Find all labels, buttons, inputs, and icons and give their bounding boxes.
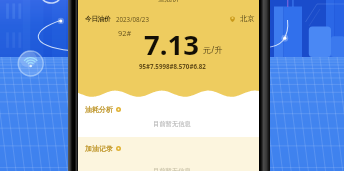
button[interactable]: Select city: [229, 14, 256, 23]
staticText: 元/升: [203, 44, 223, 55]
staticText: 查油价: [158, 0, 179, 3]
staticText: 加油记录: [85, 144, 113, 153]
staticText: 92#: [118, 28, 132, 38]
staticText: 目前暂无信息: [153, 120, 191, 128]
staticText: 目前暂无信息: [153, 167, 191, 171]
staticText: 油耗分析: [85, 105, 113, 114]
staticText: 今日油价: [85, 15, 111, 23]
staticText: 2023/08/23: [116, 15, 149, 23]
button[interactable]: 油耗分析: [78, 105, 259, 114]
staticText: 北京: [240, 14, 255, 23]
staticText: 95#7.5998#8.570#6.82: [139, 62, 206, 70]
button[interactable]: 加油记录: [78, 144, 259, 153]
staticText: 7.13: [144, 26, 199, 56]
